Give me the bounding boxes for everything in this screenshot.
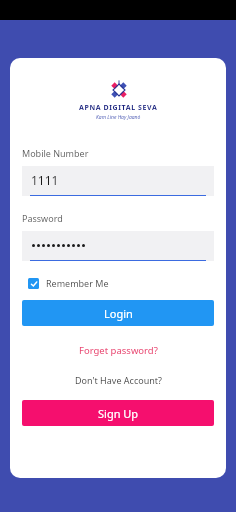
staticText: Password [22, 212, 63, 224]
button[interactable] [22, 231, 214, 261]
staticText: Kam Line Hay Jaanó [96, 114, 141, 121]
staticText: 1111 [31, 172, 59, 188]
button[interactable]: 1111 [22, 166, 214, 196]
staticText: Remember Me [46, 277, 109, 289]
staticText: Mobile Number [22, 147, 89, 159]
button[interactable]: Sign Up [22, 400, 214, 426]
staticText: Forget password? [79, 344, 158, 357]
button[interactable]: Remember Me [22, 275, 109, 291]
staticText: Login [104, 306, 133, 321]
staticText: Don't Have Account? [75, 374, 162, 386]
staticText: Sign Up [98, 406, 139, 421]
staticText: APNA DIGITAL SEVA [79, 103, 158, 113]
button[interactable]: Login [22, 300, 214, 326]
button[interactable]: Forget password? [73, 341, 164, 360]
